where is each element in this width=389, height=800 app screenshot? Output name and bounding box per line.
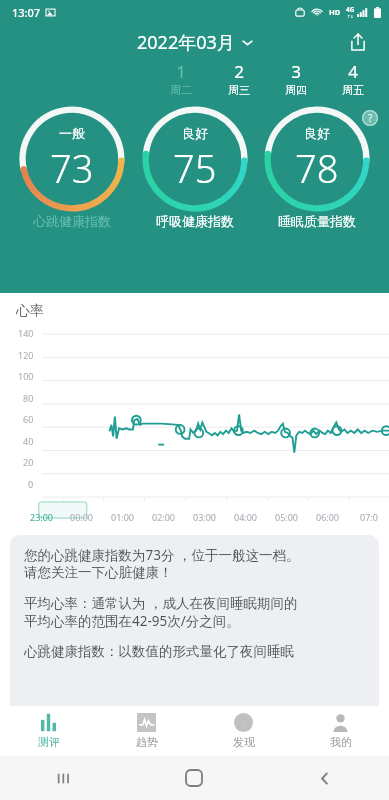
staticText: 您的心跳健康指数为73分 ，位于一般这一档。	[24, 546, 300, 564]
button[interactable]: 测评	[0, 706, 98, 756]
button[interactable]: 良好	[263, 105, 371, 229]
staticText: 80	[23, 392, 34, 404]
staticText: 心跳健康指数：以数值的形式量化了夜间睡眠	[24, 643, 294, 660]
staticText: 发现	[233, 735, 255, 749]
staticText: 03:00	[193, 511, 217, 523]
staticText: 00:00	[70, 511, 94, 523]
button[interactable]: 2022年03月	[129, 27, 261, 58]
staticText: 趋势	[136, 735, 158, 749]
staticText: 78	[295, 142, 339, 194]
staticText: 2022年03月	[137, 30, 235, 55]
staticText: 良好	[182, 125, 208, 141]
staticText: 75	[173, 142, 217, 194]
staticText: 04:00	[234, 511, 258, 523]
staticText: 3	[291, 60, 301, 83]
staticText: 平均心率的范围在42-95次/分之间。	[24, 612, 240, 630]
button[interactable]: 1	[152, 60, 210, 97]
button[interactable]: 趋势	[98, 706, 195, 756]
button[interactable]: Recent apps	[0, 756, 129, 800]
staticText: ?	[368, 111, 373, 125]
staticText: 测评	[38, 735, 60, 749]
staticText: 0	[28, 478, 34, 490]
button[interactable]: 您的心跳健康指数为73分 ，位于一般这一档。	[10, 535, 379, 706]
staticText: 05:00	[275, 511, 299, 523]
staticText: 07:0	[360, 511, 378, 523]
staticText: 周二	[170, 83, 192, 97]
staticText: 120	[18, 349, 34, 361]
staticText: 平均心率：通常认为 ，成人在夜间睡眠期间的	[24, 594, 298, 612]
button[interactable]: Back	[259, 756, 389, 800]
staticText: 13:07	[12, 5, 41, 20]
staticText: 周四	[285, 83, 307, 97]
staticText: 一般	[59, 125, 85, 141]
staticText: 周三	[228, 83, 250, 97]
button[interactable]: 发现	[195, 706, 292, 756]
staticText: 心率	[16, 302, 44, 320]
staticText: 73	[50, 142, 94, 194]
button[interactable]: 一般	[18, 105, 126, 229]
button[interactable]: 我的	[292, 706, 389, 756]
staticText: 100	[18, 370, 34, 382]
staticText: 2	[234, 60, 244, 83]
staticText: 周五	[342, 83, 364, 97]
staticText: HD	[329, 7, 341, 17]
staticText: 02:00	[152, 511, 176, 523]
staticText: 4	[348, 60, 358, 83]
button[interactable]: 3	[267, 60, 324, 97]
staticText: 1	[176, 60, 186, 83]
button[interactable]: 良好	[141, 105, 249, 229]
staticText: 4G	[346, 5, 355, 14]
staticText: ↑↓	[347, 14, 354, 19]
button[interactable]: 2	[210, 60, 267, 97]
staticText: 06:00	[316, 511, 340, 523]
staticText: 良好	[304, 125, 330, 141]
staticText: 23:00	[30, 511, 54, 523]
staticText: 睡眠质量指数	[278, 213, 356, 229]
button[interactable]: Help	[359, 107, 381, 129]
button[interactable]: Home	[129, 756, 259, 800]
button[interactable]: 4	[324, 60, 381, 97]
button[interactable]: Share	[343, 27, 373, 57]
staticText: 40	[23, 435, 34, 447]
staticText: 140	[18, 327, 34, 339]
staticText: 60	[23, 413, 34, 425]
staticText: 请您关注一下心脏健康！	[24, 564, 173, 581]
staticText: 心跳健康指数	[33, 213, 111, 229]
staticText: 我的	[330, 735, 352, 749]
staticText: 01:00	[111, 511, 135, 523]
staticText: 呼吸健康指数	[156, 213, 234, 229]
staticText: 20	[23, 456, 34, 468]
